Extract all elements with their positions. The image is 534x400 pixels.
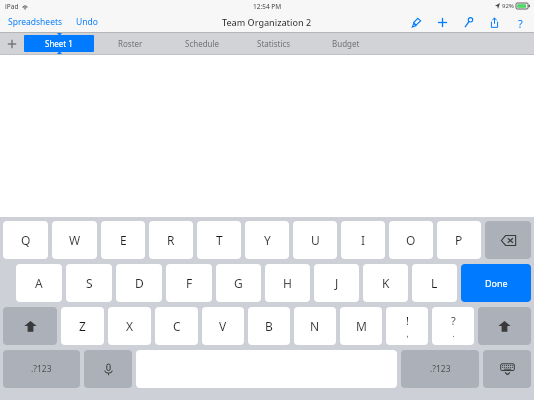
staticText: ? (518, 16, 523, 29)
button[interactable]: Done (461, 264, 531, 302)
button[interactable]: I (341, 221, 385, 259)
button[interactable]: A (16, 264, 62, 302)
staticText: P (455, 232, 463, 248)
staticText: C (173, 318, 181, 334)
button[interactable]: Help (514, 16, 527, 29)
staticText: X (126, 318, 134, 334)
staticText: S (86, 275, 93, 291)
button[interactable]: W (52, 221, 97, 259)
button[interactable]: Undo (74, 14, 100, 30)
staticText: B (265, 318, 273, 334)
staticText: I (361, 232, 366, 248)
button[interactable]: C (155, 307, 198, 345)
staticText: 92% (502, 2, 514, 10)
staticText: F (186, 275, 193, 291)
button[interactable]: S (66, 264, 112, 302)
button[interactable]: Add sheet (0, 33, 24, 54)
button[interactable]: P (437, 221, 481, 259)
staticText: O (406, 232, 416, 248)
button[interactable]: Schedule (166, 33, 238, 54)
button[interactable]: Hide keyboard (483, 350, 531, 388)
button[interactable]: O (389, 221, 433, 259)
staticText: Z (79, 318, 86, 334)
staticText: Roster (118, 38, 143, 49)
button[interactable]: ? (432, 307, 474, 345)
staticText: iPad (5, 2, 19, 11)
button[interactable]: J (314, 264, 359, 302)
button[interactable]: Roster (94, 33, 166, 54)
staticText: Undo (76, 16, 98, 28)
button[interactable]: Tools (462, 16, 475, 29)
staticText: A (35, 275, 43, 291)
staticText: 12:54 PM (253, 2, 282, 11)
staticText: U (311, 232, 320, 248)
button[interactable]: T (197, 221, 241, 259)
staticText: N (310, 318, 320, 334)
button[interactable]: M (340, 307, 382, 345)
button[interactable]: N (294, 307, 336, 345)
button[interactable]: Backspace (485, 221, 531, 259)
button[interactable]: E (101, 221, 145, 259)
staticText: V (219, 318, 227, 334)
button[interactable]: B (248, 307, 290, 345)
button[interactable]: Statistics (238, 33, 310, 54)
staticText: Team Organization 2 (222, 16, 312, 28)
button[interactable]: .?123 (3, 350, 80, 388)
staticText: D (135, 275, 144, 291)
button[interactable]: Share (488, 16, 501, 29)
staticText: . (452, 328, 455, 339)
staticText: , (406, 328, 409, 339)
staticText: Statistics (257, 38, 291, 49)
staticText: E (120, 232, 127, 248)
staticText: G (234, 275, 243, 291)
button[interactable]: ! (386, 307, 428, 345)
button[interactable]: Budget (310, 33, 382, 54)
staticText: ? (451, 313, 456, 328)
button[interactable]: D (116, 264, 162, 302)
staticText: Sheet 1 (45, 38, 73, 49)
button[interactable]: U (293, 221, 337, 259)
staticText: .?123 (31, 363, 52, 375)
button[interactable]: Shift (3, 307, 57, 345)
staticText: T (216, 232, 223, 248)
staticText: Y (264, 232, 271, 248)
button[interactable]: G (216, 264, 261, 302)
staticText: M (356, 318, 367, 334)
button[interactable]: K (363, 264, 408, 302)
button[interactable]: R (149, 221, 193, 259)
staticText: L (431, 275, 438, 291)
button[interactable]: H (265, 264, 310, 302)
staticText: Done (485, 277, 508, 289)
button[interactable]: Dictation (84, 350, 132, 388)
button[interactable]: V (202, 307, 244, 345)
button[interactable]: Z (61, 307, 104, 345)
button[interactable]: F (166, 264, 212, 302)
button[interactable]: Sheet 1 (24, 33, 94, 54)
staticText: Spreadsheets (8, 16, 63, 28)
staticText: K (382, 275, 390, 291)
staticText: Schedule (185, 38, 220, 49)
staticText: J (335, 275, 339, 291)
staticText: R (167, 232, 175, 248)
button[interactable]: Shift (478, 307, 531, 345)
button[interactable]: Spreadsheets (6, 14, 65, 30)
staticText: W (69, 232, 81, 248)
button[interactable]: X (108, 307, 151, 345)
staticText: ! (406, 313, 409, 328)
button[interactable]: Format (410, 16, 423, 29)
button[interactable]: L (412, 264, 457, 302)
staticText: Budget (332, 38, 360, 49)
button[interactable]: Q (3, 221, 48, 259)
button[interactable]: Y (245, 221, 289, 259)
button[interactable]: Insert (436, 16, 449, 29)
staticText: .?123 (430, 363, 451, 375)
button[interactable]: .?123 (401, 350, 479, 388)
staticText: H (283, 275, 292, 291)
staticText: Q (21, 232, 31, 248)
